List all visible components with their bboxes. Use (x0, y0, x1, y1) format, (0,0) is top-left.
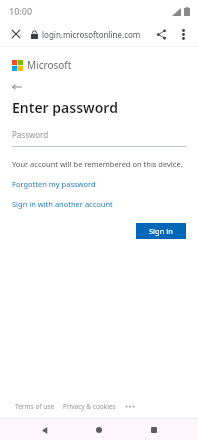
button[interactable]: Privacy & cookies (63, 402, 116, 411)
button[interactable]: Share (150, 23, 172, 45)
button[interactable]: Password (12, 129, 186, 147)
staticText: Sign in (149, 226, 173, 236)
staticText: Terms of use (15, 402, 55, 411)
button[interactable]: More (124, 401, 136, 411)
button[interactable]: Back (12, 81, 26, 93)
staticText: Microsoft (27, 58, 72, 72)
staticText: Your account will be remembered on this … (12, 159, 183, 169)
staticText: Enter password (12, 98, 118, 117)
button[interactable]: Sign in with another account (12, 199, 113, 209)
button[interactable]: Forgotten my password (12, 179, 96, 189)
staticText: Privacy & cookies (63, 402, 116, 411)
staticText: Forgotten my password (12, 179, 96, 189)
button[interactable]: Terms of use (15, 402, 55, 411)
staticText: login.microsoftonline.com (42, 29, 141, 40)
staticText: Password (12, 129, 49, 140)
button[interactable]: Home (89, 420, 109, 440)
button[interactable]: More options (172, 23, 194, 45)
button[interactable]: Sign in (136, 223, 186, 239)
button[interactable]: Recent apps (144, 420, 164, 440)
button[interactable]: Back (35, 420, 55, 440)
button[interactable]: Close (5, 23, 27, 45)
staticText: 10:00 (9, 5, 33, 17)
staticText: Sign in with another account (12, 199, 113, 209)
